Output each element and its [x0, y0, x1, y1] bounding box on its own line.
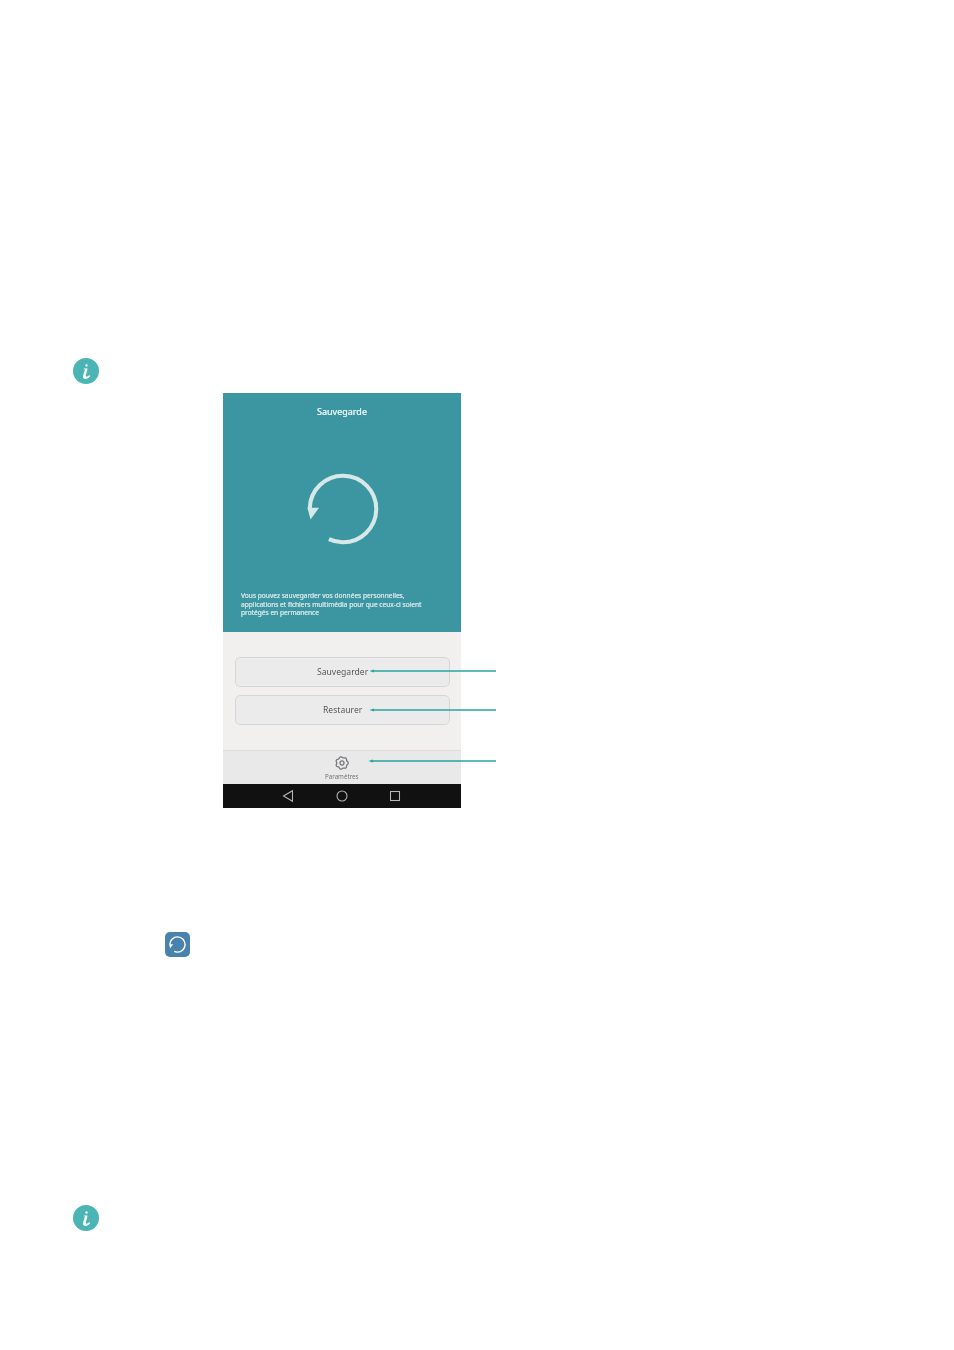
staticText: Vous pouvez sauvegarder vos données pers…	[241, 591, 431, 617]
button[interactable]: Backup app	[165, 932, 190, 957]
button[interactable]: Information	[73, 1205, 99, 1231]
button[interactable]: Restaurer	[235, 695, 450, 725]
staticText: Sauvegarder	[317, 666, 369, 678]
staticText: Restaurer	[323, 704, 363, 716]
button[interactable]: Paramètres	[223, 750, 461, 784]
staticText: Paramètres	[325, 772, 359, 780]
button[interactable]: Sauvegarder	[235, 657, 450, 687]
button[interactable]: Information	[73, 358, 99, 384]
staticText: Sauvegarde	[223, 405, 461, 417]
